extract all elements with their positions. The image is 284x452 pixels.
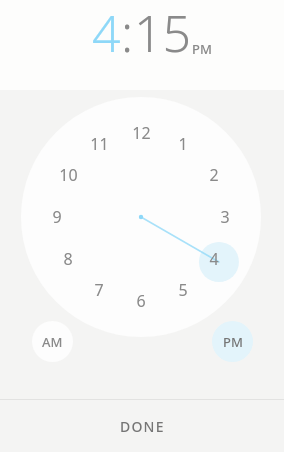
button[interactable]: 4 <box>92 0 121 67</box>
button[interactable]: PM <box>212 321 253 362</box>
staticText: PM <box>223 333 243 351</box>
staticText: PM <box>192 40 212 58</box>
button[interactable]: 3 <box>208 203 242 231</box>
button[interactable]: 6 <box>124 287 158 315</box>
staticText: 1 <box>178 133 188 155</box>
staticText: 7 <box>94 279 104 301</box>
staticText: : <box>121 0 134 67</box>
staticText: 12 <box>132 122 151 144</box>
staticText: 5 <box>178 279 188 301</box>
button[interactable]: 7 <box>82 276 116 304</box>
staticText: AM <box>42 333 63 351</box>
button[interactable]: 4 <box>197 245 231 273</box>
staticText: 3 <box>220 206 230 228</box>
staticText: 4 <box>92 0 121 67</box>
staticText: 15 <box>134 0 192 67</box>
staticText: 9 <box>52 206 62 228</box>
staticText: 4 <box>209 248 219 270</box>
button[interactable]: 11 <box>82 130 116 158</box>
staticText: 11 <box>90 133 109 155</box>
staticText: 10 <box>59 164 78 186</box>
button[interactable]: AM <box>32 321 73 362</box>
button[interactable]: 5 <box>166 276 200 304</box>
button[interactable]: PM <box>192 40 212 58</box>
staticText: 8 <box>63 248 73 270</box>
button[interactable]: 9 <box>40 203 74 231</box>
button[interactable]: 12 <box>124 119 158 147</box>
button[interactable]: DONE <box>0 400 284 452</box>
staticText: 6 <box>136 290 146 312</box>
button[interactable]: 8 <box>51 245 85 273</box>
button[interactable]: 15 <box>134 0 192 67</box>
button[interactable]: 10 <box>51 161 85 189</box>
staticText: 2 <box>209 164 219 186</box>
staticText: DONE <box>120 417 165 436</box>
button[interactable]: 1 <box>166 130 200 158</box>
button[interactable]: 2 <box>197 161 231 189</box>
